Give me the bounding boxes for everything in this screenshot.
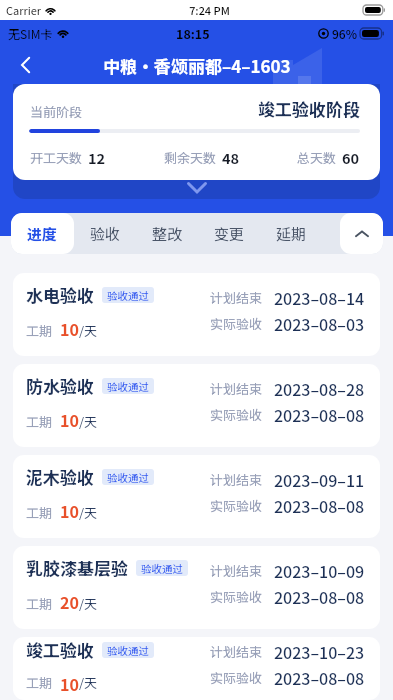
staticText: 2023–08–08 bbox=[274, 666, 365, 689]
staticText: 2023–10–09 bbox=[274, 559, 365, 582]
staticText: 工期 bbox=[26, 321, 53, 340]
staticText: 48 bbox=[222, 147, 240, 168]
staticText: /天 bbox=[79, 503, 98, 522]
staticText: 实际验收 bbox=[210, 496, 263, 515]
staticText: 10 bbox=[60, 672, 79, 692]
staticText: 12 bbox=[88, 147, 106, 168]
staticText: 计划结束 bbox=[210, 470, 263, 489]
staticText: 10 bbox=[60, 408, 79, 431]
button[interactable]: 返回 bbox=[6, 46, 46, 84]
staticText: 18:15 bbox=[176, 24, 210, 42]
staticText: 变更 bbox=[214, 223, 245, 245]
staticText: 10 bbox=[60, 499, 79, 522]
staticText: 实际验收 bbox=[210, 587, 263, 606]
staticText: /天 bbox=[79, 321, 98, 340]
staticText: 2023–10–23 bbox=[274, 640, 365, 663]
button[interactable]: 竣工验收 bbox=[13, 637, 380, 700]
staticText: 验收通过 bbox=[141, 561, 183, 576]
staticText: 计划结束 bbox=[210, 561, 263, 580]
staticText: 当前阶段 bbox=[30, 102, 83, 121]
staticText: 泥木验收 bbox=[26, 464, 94, 489]
staticText: 防水验收 bbox=[26, 373, 94, 398]
staticText: 水电验收 bbox=[26, 282, 94, 307]
staticText: 进度 bbox=[27, 223, 58, 245]
staticText: 实际验收 bbox=[210, 405, 263, 424]
button[interactable]: 整改 bbox=[136, 213, 198, 254]
staticText: 7:24 PM bbox=[189, 2, 230, 18]
staticText: 2023–08–14 bbox=[274, 286, 365, 309]
staticText: 计划结束 bbox=[210, 288, 263, 307]
staticText: 20 bbox=[60, 590, 79, 613]
button[interactable]: 收起 bbox=[340, 213, 383, 254]
button[interactable]: 延期 bbox=[260, 213, 322, 254]
staticText: 2023–08–08 bbox=[274, 403, 365, 426]
staticText: 60 bbox=[342, 147, 360, 168]
staticText: 工期 bbox=[26, 594, 53, 613]
staticText: 2023–08–08 bbox=[274, 494, 365, 517]
button[interactable]: 防水验收 bbox=[13, 364, 380, 447]
staticText: /天 bbox=[79, 412, 98, 431]
button[interactable]: 展开 bbox=[13, 84, 380, 199]
staticText: 验收通过 bbox=[107, 288, 149, 303]
staticText: 竣工验收阶段 bbox=[258, 96, 360, 121]
button[interactable]: 泥木验收 bbox=[13, 455, 380, 538]
staticText: 计划结束 bbox=[210, 379, 263, 398]
staticText: 实际验收 bbox=[210, 314, 263, 333]
staticText: 2023–08–28 bbox=[274, 377, 365, 400]
button[interactable]: 验收 bbox=[74, 213, 136, 254]
staticText: 剩余天数 bbox=[164, 148, 217, 167]
staticText: 2023–09–11 bbox=[274, 468, 365, 491]
staticText: 竣工验收 bbox=[26, 637, 94, 662]
staticText: Carrier bbox=[6, 2, 42, 18]
staticText: 验收通过 bbox=[107, 379, 149, 394]
button[interactable]: 变更 bbox=[198, 213, 260, 254]
staticText: 计划结束 bbox=[210, 642, 263, 661]
staticText: 实际验收 bbox=[210, 668, 263, 687]
button[interactable]: 进度 bbox=[11, 213, 74, 254]
staticText: 延期 bbox=[276, 223, 307, 245]
staticText: 工期 bbox=[26, 503, 53, 522]
staticText: 验收 bbox=[90, 223, 121, 245]
staticText: 验收通过 bbox=[107, 470, 149, 485]
staticText: 中粮·香颂丽都–4–1603 bbox=[103, 53, 291, 78]
staticText: 乳胶漆基层验 bbox=[26, 555, 128, 580]
staticText: /天 bbox=[79, 594, 98, 613]
button[interactable]: 水电验收 bbox=[13, 273, 380, 356]
staticText: 2023–08–08 bbox=[274, 585, 365, 608]
staticText: 开工天数 bbox=[30, 148, 83, 167]
staticText: 10 bbox=[60, 317, 79, 340]
staticText: 总天数 bbox=[297, 148, 337, 167]
staticText: 整改 bbox=[152, 223, 183, 245]
staticText: 无SIM卡 bbox=[8, 25, 53, 42]
staticText: 工期 bbox=[26, 673, 53, 692]
staticText: /天 bbox=[79, 673, 98, 692]
staticText: 2023–08–03 bbox=[274, 312, 365, 335]
staticText: 96% bbox=[332, 25, 357, 42]
button[interactable]: 乳胶漆基层验 bbox=[13, 546, 380, 629]
staticText: 工期 bbox=[26, 412, 53, 431]
staticText: 验收通过 bbox=[107, 643, 149, 658]
